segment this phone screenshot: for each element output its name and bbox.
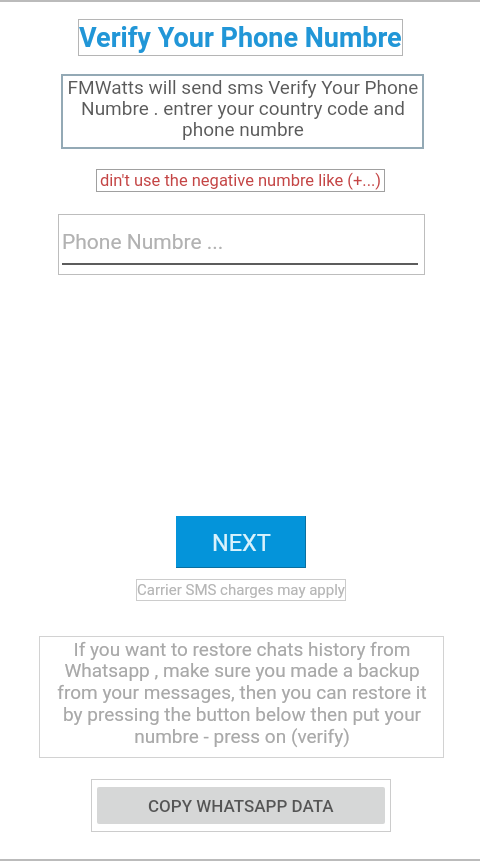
staticText: If you want to restore chats history fro…	[53, 638, 431, 748]
staticText: din't use the negative numbre like (+...…	[100, 171, 382, 190]
staticText: NEXT	[212, 529, 271, 557]
button[interactable]: Phone Numbre ...	[58, 214, 425, 275]
staticText: Verify Your Phone Numbre	[79, 22, 402, 54]
button[interactable]: NEXT	[176, 516, 306, 568]
staticText: Carrier SMS charges may apply	[137, 581, 345, 599]
staticText: Phone Numbre ...	[62, 230, 224, 255]
staticText: COPY WHATSAPP DATA	[148, 796, 334, 816]
button[interactable]: COPY WHATSAPP DATA	[97, 787, 385, 824]
staticText: FMWatts will send sms Verify Your Phone …	[67, 76, 419, 140]
